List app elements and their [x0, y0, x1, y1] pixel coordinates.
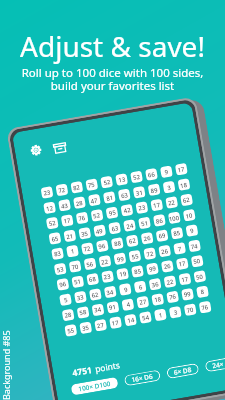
button[interactable]: 9: [185, 224, 198, 237]
button[interactable]: 18: [151, 293, 164, 305]
button[interactable]: 75: [85, 178, 98, 191]
button[interactable]: 13: [115, 173, 128, 186]
button[interactable]: 100× D100: [70, 377, 119, 396]
button[interactable]: 99: [114, 253, 127, 265]
button[interactable]: 16× D6: [124, 369, 161, 386]
button[interactable]: 70: [184, 303, 196, 316]
button[interactable]: 3: [169, 306, 181, 319]
button[interactable]: 35: [79, 321, 92, 334]
button[interactable]: 36: [149, 278, 161, 291]
button[interactable]: Saved sets: [47, 135, 73, 161]
button[interactable]: 23: [101, 270, 113, 283]
button[interactable]: 21: [63, 230, 76, 243]
button[interactable]: 28: [62, 308, 74, 321]
button[interactable]: 43: [58, 199, 71, 212]
button[interactable]: 70: [69, 260, 81, 273]
button[interactable]: 1: [154, 309, 167, 321]
button[interactable]: Settings: [23, 137, 49, 163]
button[interactable]: 85: [170, 227, 183, 239]
button[interactable]: 23: [40, 186, 53, 199]
button[interactable]: 53: [54, 263, 66, 276]
button[interactable]: 76: [75, 212, 88, 224]
button[interactable]: 26: [158, 245, 171, 258]
button[interactable]: 22: [98, 255, 111, 268]
button[interactable]: 23: [135, 201, 148, 214]
button[interactable]: 14: [124, 314, 137, 326]
button[interactable]: 26: [141, 232, 153, 244]
button[interactable]: 17: [176, 257, 188, 270]
button[interactable]: 50: [190, 255, 203, 267]
button[interactable]: 6× D8: [166, 363, 199, 379]
button[interactable]: 63: [118, 189, 131, 202]
button[interactable]: 17: [178, 273, 191, 286]
button[interactable]: 50: [193, 270, 206, 283]
button[interactable]: 88: [111, 237, 124, 249]
button[interactable]: 10: [183, 209, 195, 222]
button[interactable]: 68: [86, 273, 99, 285]
button[interactable]: 69: [155, 229, 168, 242]
button[interactable]: 58: [76, 306, 89, 318]
button[interactable]: 52: [130, 171, 143, 183]
button[interactable]: 8: [196, 285, 208, 298]
button[interactable]: 72: [143, 247, 156, 260]
button[interactable]: 5: [59, 293, 72, 306]
button[interactable]: 7: [173, 242, 186, 255]
button[interactable]: 35: [78, 227, 91, 240]
button[interactable]: 52: [101, 176, 113, 188]
button[interactable]: 19: [116, 267, 129, 280]
button[interactable]: 17: [109, 316, 121, 329]
button[interactable]: 65: [48, 232, 61, 245]
button[interactable]: 1: [66, 245, 79, 257]
button[interactable]: 51: [138, 217, 151, 230]
button[interactable]: 52: [90, 209, 103, 222]
button[interactable]: 24: [123, 219, 136, 232]
button[interactable]: 99: [146, 262, 159, 275]
button[interactable]: 63: [109, 222, 121, 235]
button[interactable]: 81: [103, 191, 116, 204]
button[interactable]: 66: [145, 168, 158, 181]
button[interactable]: 28: [73, 197, 85, 209]
button[interactable]: 33: [74, 291, 87, 304]
button[interactable]: 9: [119, 283, 132, 296]
button[interactable]: 86: [153, 214, 166, 227]
button[interactable]: 3: [162, 181, 175, 194]
button[interactable]: 52: [46, 217, 58, 229]
button[interactable]: 82: [70, 181, 83, 194]
button[interactable]: 17: [175, 163, 187, 176]
button[interactable]: 74: [188, 240, 200, 252]
button[interactable]: 31: [133, 186, 146, 199]
button[interactable]: 17: [150, 199, 163, 211]
button[interactable]: 54: [139, 311, 152, 324]
button[interactable]: 83: [51, 247, 64, 260]
button[interactable]: 17: [61, 214, 73, 227]
button[interactable]: 27: [136, 295, 149, 308]
button[interactable]: 96: [56, 278, 69, 290]
button[interactable]: 4: [122, 298, 134, 311]
button[interactable]: 34: [103, 286, 116, 299]
button[interactable]: 55: [64, 324, 77, 337]
button[interactable]: 76: [166, 290, 179, 303]
button[interactable]: 96: [95, 239, 108, 252]
button[interactable]: 22: [163, 275, 176, 288]
button[interactable]: 42: [121, 204, 133, 216]
button[interactable]: 12: [43, 202, 56, 215]
button[interactable]: 22: [165, 196, 178, 209]
button[interactable]: 99: [181, 288, 194, 300]
button[interactable]: 89: [148, 184, 160, 196]
button[interactable]: 56: [83, 258, 96, 271]
button[interactable]: 62: [126, 234, 139, 247]
button[interactable]: 27: [94, 319, 107, 332]
button[interactable]: 72: [81, 242, 93, 255]
button[interactable]: 91: [106, 301, 119, 313]
button[interactable]: 24× D4: [204, 356, 225, 372]
button[interactable]: 62: [89, 288, 101, 301]
button[interactable]: 72: [55, 184, 68, 196]
button[interactable]: 55: [129, 250, 141, 263]
button[interactable]: 26: [161, 260, 173, 272]
button[interactable]: 85: [131, 265, 144, 277]
button[interactable]: 6: [134, 281, 147, 293]
button[interactable]: 62: [180, 193, 192, 206]
button[interactable]: 9: [160, 165, 172, 178]
button[interactable]: 95: [106, 206, 119, 219]
button[interactable]: 100: [168, 212, 180, 224]
